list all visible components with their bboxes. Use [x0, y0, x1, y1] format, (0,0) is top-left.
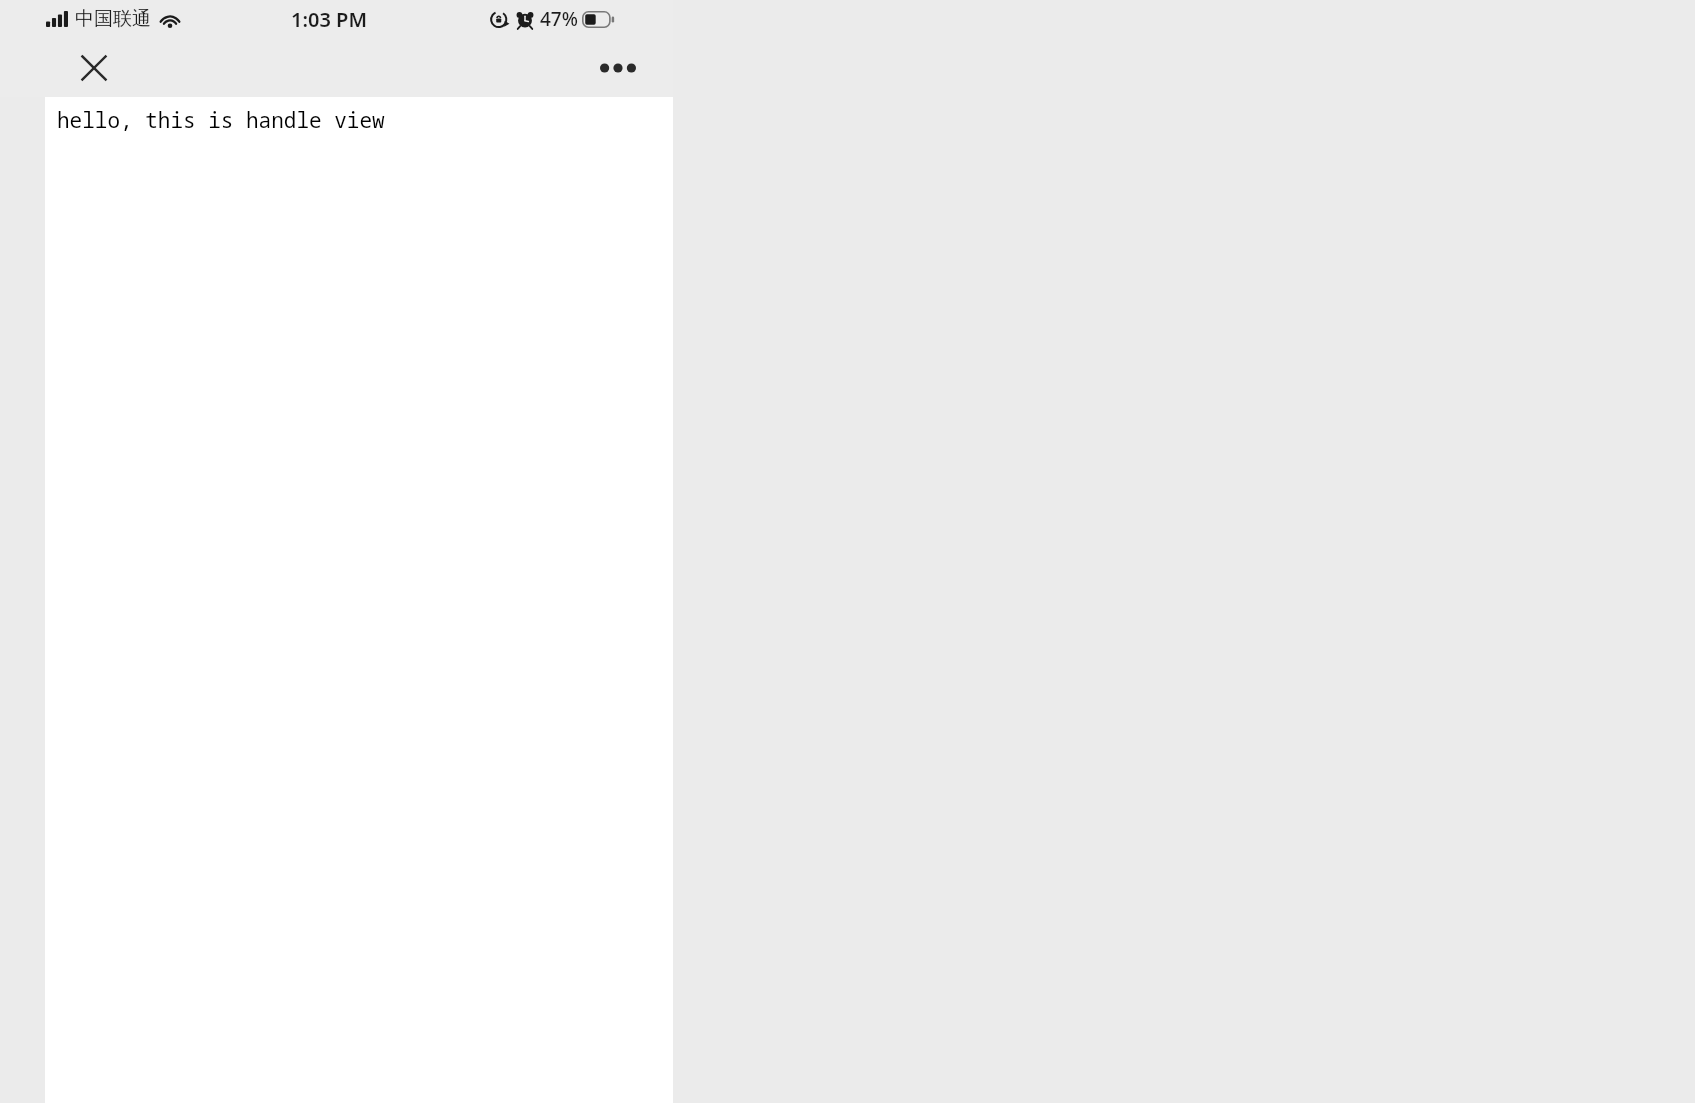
staticText: 47%: [540, 6, 578, 32]
button[interactable]: More options: [592, 42, 644, 94]
button[interactable]: Close: [68, 42, 120, 94]
staticText: 1:03 PM: [291, 6, 367, 33]
staticText: hello, this is handle view: [57, 106, 385, 135]
staticText: 中国联通: [75, 7, 151, 31]
